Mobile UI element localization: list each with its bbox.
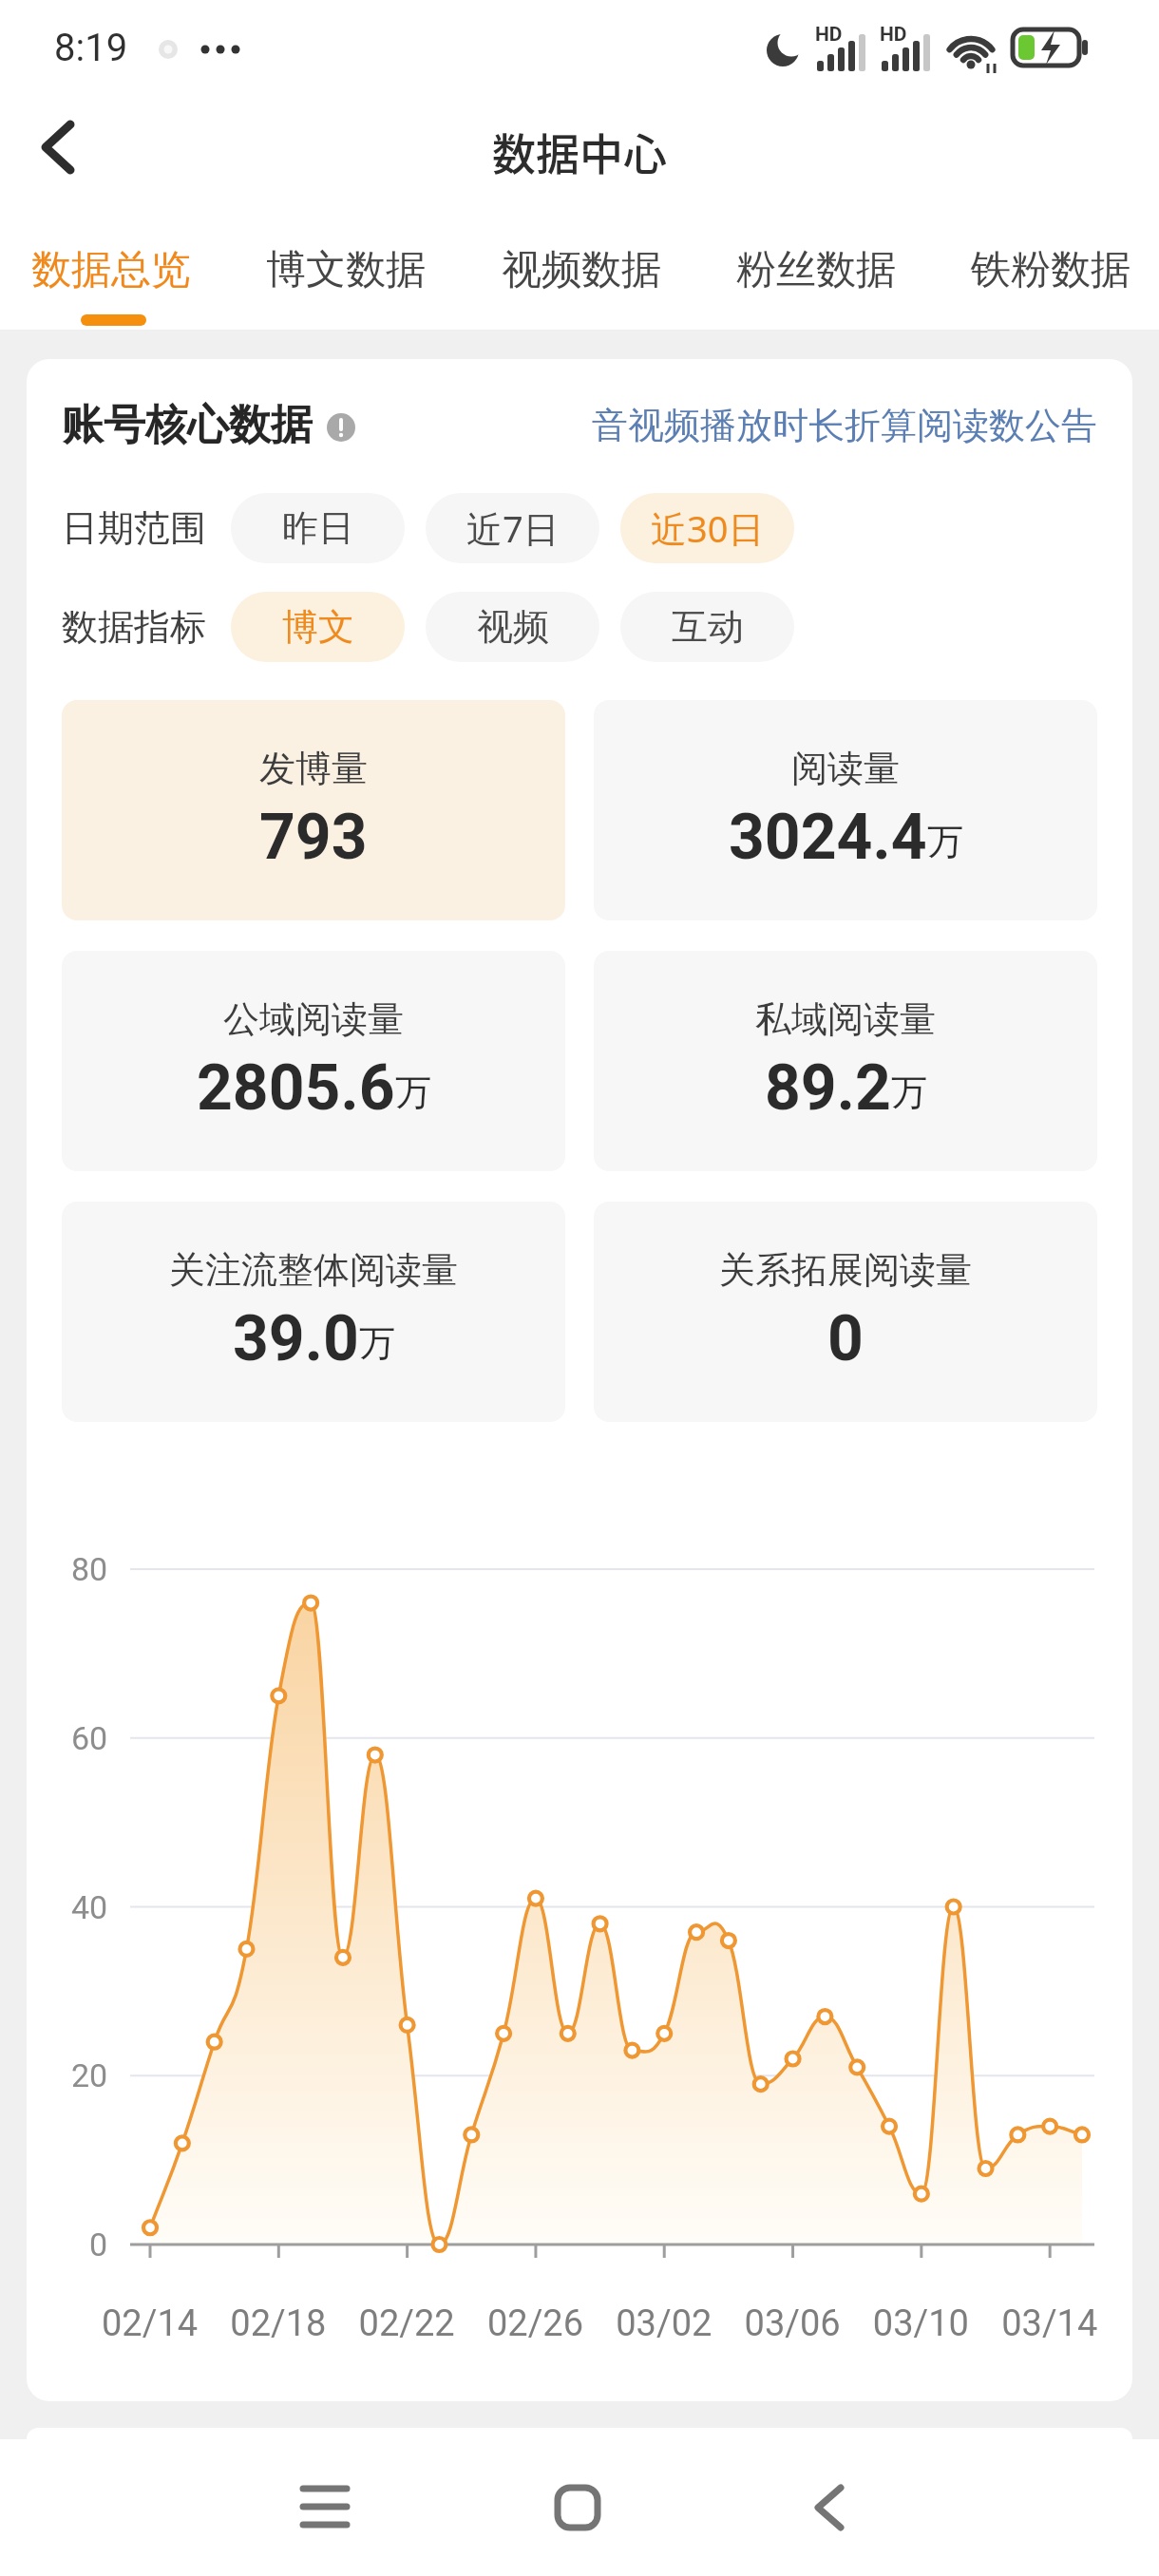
- staticText: 关系拓展阅读量: [719, 1247, 972, 1293]
- staticText: HD: [815, 23, 843, 47]
- staticText: 音视频播放时长折算阅读数公告: [592, 403, 1097, 448]
- staticText: 0: [827, 1302, 864, 1375]
- button[interactable]: [814, 2485, 845, 2530]
- button[interactable]: [555, 2486, 598, 2529]
- staticText: 万: [395, 1070, 431, 1115]
- staticText: 发博量: [259, 746, 368, 791]
- staticText: 视频: [477, 604, 549, 650]
- staticText: 公域阅读量: [223, 996, 404, 1042]
- staticText: 关注流整体阅读量: [169, 1247, 458, 1293]
- staticText: 数据中心: [492, 120, 667, 183]
- staticText: 数据总览: [31, 245, 191, 295]
- staticText: 日期范围: [62, 505, 206, 551]
- staticText: 账号核心数据: [62, 399, 313, 451]
- staticText: 数据指标: [62, 604, 206, 650]
- button[interactable]: 粉丝数据: [736, 245, 896, 295]
- staticText: 博文数据: [266, 245, 426, 295]
- button[interactable]: 视频: [426, 592, 599, 662]
- staticText: 万: [891, 1070, 927, 1115]
- staticText: 私域阅读量: [755, 996, 936, 1042]
- button[interactable]: 关系拓展阅读量: [594, 1202, 1097, 1422]
- staticText: 互动: [672, 604, 744, 650]
- button[interactable]: 数据总览: [31, 245, 191, 295]
- button[interactable]: 关注流整体阅读量: [62, 1202, 565, 1422]
- staticText: 近7日: [466, 503, 560, 553]
- button[interactable]: 近30日: [620, 493, 794, 563]
- button[interactable]: 博文: [231, 592, 405, 662]
- button[interactable]: 发博量: [62, 700, 565, 920]
- button[interactable]: 音视频播放时长折算阅读数公告: [592, 403, 1097, 448]
- staticText: 万: [927, 819, 963, 864]
- staticText: 2805.6: [197, 1051, 395, 1125]
- staticText: 近30日: [651, 503, 765, 553]
- button[interactable]: 铁粉数据: [971, 245, 1130, 295]
- staticText: 39.0: [233, 1302, 359, 1375]
- button[interactable]: [42, 119, 74, 176]
- staticText: 万: [359, 1320, 395, 1366]
- button[interactable]: 互动: [620, 592, 794, 662]
- staticText: 粉丝数据: [736, 245, 896, 295]
- staticText: 8:19: [54, 26, 128, 70]
- button[interactable]: 昨日: [231, 493, 405, 563]
- staticText: 视频数据: [502, 245, 661, 295]
- staticText: 阅读量: [791, 746, 900, 791]
- button[interactable]: 近7日: [426, 493, 599, 563]
- staticText: 博文: [282, 604, 354, 650]
- staticText: HD: [880, 23, 907, 47]
- staticText: 793: [259, 801, 368, 874]
- staticText: 昨日: [282, 505, 354, 551]
- button[interactable]: 公域阅读量: [62, 951, 565, 1171]
- staticText: 3024.4: [729, 801, 927, 874]
- staticText: 铁粉数据: [971, 245, 1130, 295]
- button[interactable]: 视频数据: [502, 245, 661, 295]
- button[interactable]: 阅读量: [594, 700, 1097, 920]
- button[interactable]: 私域阅读量: [594, 951, 1097, 1171]
- button[interactable]: 博文数据: [266, 245, 426, 295]
- staticText: 89.2: [765, 1051, 891, 1125]
- button[interactable]: [303, 2487, 347, 2529]
